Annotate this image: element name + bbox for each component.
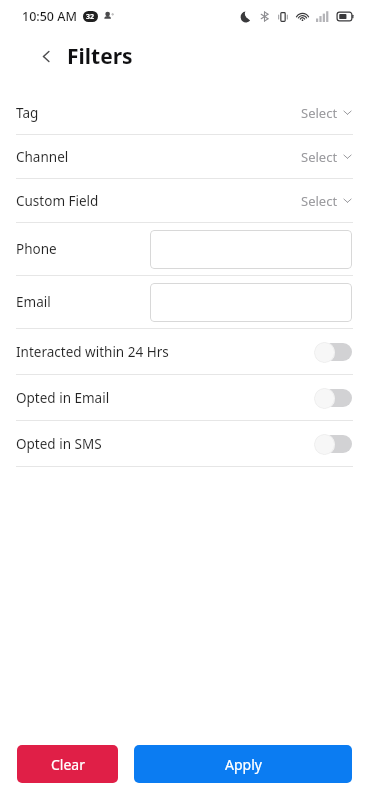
button[interactable]: Channel xyxy=(0,135,369,178)
button[interactable]: Interacted within 24 Hrs xyxy=(314,341,352,363)
staticText: Custom Field xyxy=(16,192,99,210)
button[interactable]: Opted in SMS xyxy=(314,433,352,455)
staticText: Select xyxy=(301,192,338,210)
staticText: Email xyxy=(16,293,51,311)
staticText: 32 xyxy=(86,12,95,22)
staticText: Filters xyxy=(67,42,133,71)
staticText: Channel xyxy=(16,148,69,166)
button[interactable] xyxy=(150,230,352,269)
staticText: Phone xyxy=(16,240,57,258)
staticText: Apply xyxy=(225,755,262,774)
staticText: 10:50 AM xyxy=(22,8,77,25)
button[interactable]: Back xyxy=(33,43,59,69)
staticText: Select xyxy=(301,148,338,166)
button[interactable]: Custom Field xyxy=(0,179,369,222)
staticText: Tag xyxy=(16,104,39,122)
button[interactable]: Opted in Email xyxy=(314,387,352,409)
staticText: Opted in SMS xyxy=(16,435,102,453)
button[interactable]: Clear xyxy=(17,745,118,783)
button[interactable]: Tag xyxy=(0,91,369,134)
staticText: Interacted within 24 Hrs xyxy=(16,343,169,361)
button[interactable] xyxy=(150,283,352,322)
staticText: Clear xyxy=(51,755,85,774)
button[interactable]: Apply xyxy=(134,745,352,783)
staticText: Opted in Email xyxy=(16,389,110,407)
staticText: Select xyxy=(301,104,338,122)
